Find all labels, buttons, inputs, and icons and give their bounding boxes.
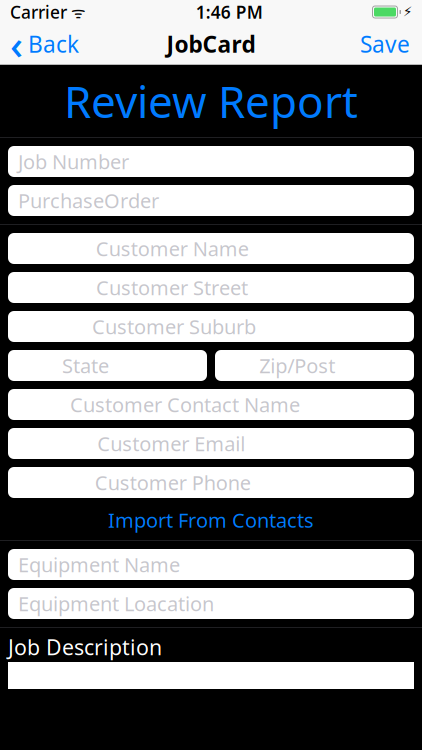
button[interactable]: ‹	[0, 24, 89, 64]
staticText: Save	[360, 29, 410, 59]
button[interactable]: Save	[348, 24, 422, 64]
staticText: PurchaseOrder	[18, 187, 159, 214]
staticText: Zip/Post	[259, 352, 335, 379]
staticText: Carrier	[10, 0, 67, 23]
staticText: Customer Street	[96, 274, 248, 301]
staticText: Back	[28, 29, 79, 59]
button[interactable]: Equipment Name	[8, 549, 414, 580]
button[interactable]: Equipment Loacation	[8, 588, 414, 619]
button[interactable]: Customer Suburb	[8, 311, 414, 342]
button[interactable]: Customer Street	[8, 272, 414, 303]
staticText: 1:46 PM	[196, 0, 263, 23]
staticText: Job Number	[18, 148, 129, 175]
staticText: ‹	[10, 17, 23, 70]
button[interactable]: Job Number	[8, 146, 414, 177]
button[interactable]: Import From Contacts	[8, 506, 414, 534]
button[interactable]: State	[8, 350, 207, 381]
button[interactable]: Customer Email	[8, 428, 414, 459]
staticText: Customer Name	[96, 235, 249, 262]
staticText: ⚡︎	[403, 4, 412, 19]
staticText: Equipment Loacation	[18, 590, 214, 617]
button[interactable]: Customer Contact Name	[8, 389, 414, 420]
staticText: Import From Contacts	[108, 507, 314, 533]
staticText: JobCard	[166, 29, 255, 59]
button[interactable]: Customer Phone	[8, 467, 414, 498]
staticText: Customer Email	[97, 430, 245, 457]
staticText: Customer Phone	[95, 469, 251, 496]
staticText: State	[62, 352, 109, 379]
button[interactable]: Customer Name	[8, 233, 414, 264]
staticText: Customer Suburb	[92, 313, 256, 340]
staticText: Equipment Name	[18, 551, 180, 578]
button[interactable]: PurchaseOrder	[8, 185, 414, 216]
staticText: Customer Contact Name	[70, 391, 300, 418]
button[interactable]: Zip/Post	[215, 350, 414, 381]
staticText: ᯤ	[67, 1, 86, 23]
staticText: Review Report	[64, 72, 358, 130]
staticText: Job Description	[8, 633, 162, 661]
